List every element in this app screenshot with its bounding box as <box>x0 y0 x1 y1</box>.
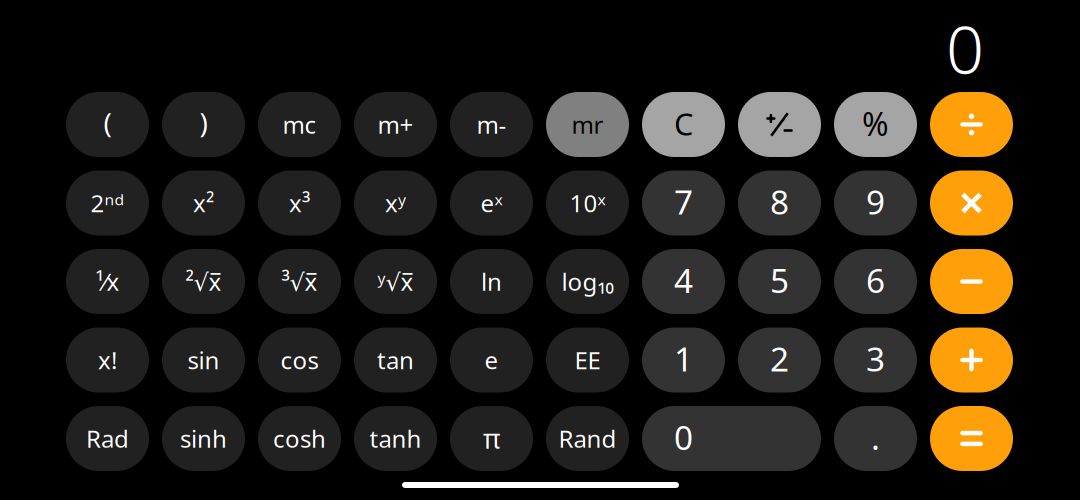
button[interactable]: 3 <box>834 327 917 392</box>
staticText: sinh <box>180 423 227 454</box>
staticText: eˣ <box>480 187 502 219</box>
staticText: e <box>484 344 498 376</box>
staticText: ³√x̅ <box>281 266 317 297</box>
staticText: ) <box>199 104 207 141</box>
button[interactable]: ( <box>66 92 149 157</box>
staticText: 0 <box>674 415 693 459</box>
staticText: Rad <box>86 423 129 454</box>
staticText: 7 <box>674 179 693 224</box>
button[interactable]: ln <box>450 249 533 314</box>
button[interactable]: 9 <box>834 170 917 235</box>
button[interactable]: cosh <box>258 406 341 471</box>
staticText: ²√x̅ <box>185 266 221 297</box>
button[interactable]: sinh <box>162 406 245 471</box>
button[interactable]: xʸ <box>354 170 437 235</box>
button[interactable]: tanh <box>354 406 437 471</box>
staticText: 10ˣ <box>569 187 605 219</box>
button[interactable]: ʸ√x̅ <box>354 249 437 314</box>
button[interactable]: eˣ <box>450 170 533 235</box>
button[interactable]: 6 <box>834 249 917 314</box>
button[interactable]: Plus or minus <box>738 92 821 157</box>
button[interactable]: ) <box>162 92 245 157</box>
button[interactable]: 5 <box>738 249 821 314</box>
button[interactable]: sin <box>162 327 245 392</box>
button[interactable]: Add <box>930 327 1013 392</box>
button[interactable]: x! <box>66 327 149 392</box>
staticText: ¹⁄x <box>95 266 119 297</box>
button[interactable]: ²√x̅ <box>162 249 245 314</box>
staticText: log₁₀ <box>561 266 613 297</box>
button[interactable]: Divide <box>930 92 1013 157</box>
staticText: cosh <box>273 423 326 454</box>
staticText: 4 <box>674 258 693 302</box>
staticText: mr <box>571 109 603 140</box>
button[interactable]: ¹⁄x <box>66 249 149 314</box>
staticText: tanh <box>369 423 421 454</box>
staticText: 0 <box>946 4 984 92</box>
button[interactable]: 1 <box>642 327 725 392</box>
staticText: π <box>483 421 500 456</box>
button[interactable]: . <box>834 406 917 471</box>
button[interactable]: tan <box>354 327 437 392</box>
staticText: 6 <box>866 258 885 302</box>
staticText: EE <box>574 344 600 376</box>
staticText: 2ⁿᵈ <box>90 187 124 219</box>
button[interactable]: x³ <box>258 170 341 235</box>
button[interactable]: 4 <box>642 249 725 314</box>
button[interactable]: ³√x̅ <box>258 249 341 314</box>
staticText: x² <box>193 187 214 219</box>
button[interactable]: x² <box>162 170 245 235</box>
staticText: x! <box>98 344 117 376</box>
staticText: m- <box>476 109 506 140</box>
button[interactable]: 7 <box>642 170 725 235</box>
button[interactable]: EE <box>546 327 629 392</box>
staticText: C <box>674 103 693 144</box>
button[interactable]: 2 <box>738 327 821 392</box>
staticText: tan <box>377 344 414 376</box>
button[interactable]: 0 <box>642 406 821 471</box>
button[interactable]: 2ⁿᵈ <box>66 170 149 235</box>
button[interactable]: cos <box>258 327 341 392</box>
staticText: ln <box>481 266 502 297</box>
button[interactable]: 10ˣ <box>546 170 629 235</box>
staticText: 2 <box>770 336 789 381</box>
button[interactable]: m+ <box>354 92 437 157</box>
button[interactable]: mc <box>258 92 341 157</box>
button[interactable]: π <box>450 406 533 471</box>
staticText: ( <box>103 104 111 141</box>
button[interactable]: m- <box>450 92 533 157</box>
button[interactable]: C <box>642 92 725 157</box>
button[interactable]: Rad <box>66 406 149 471</box>
staticText: sin <box>187 344 219 376</box>
staticText: xʸ <box>385 187 406 219</box>
button[interactable]: e <box>450 327 533 392</box>
staticText: 8 <box>770 179 789 224</box>
staticText: ʸ√x̅ <box>377 266 413 297</box>
button[interactable]: % <box>834 92 917 157</box>
staticText: x³ <box>289 187 310 219</box>
staticText: 1 <box>674 336 693 381</box>
button[interactable]: Subtract <box>930 249 1013 314</box>
staticText: cos <box>280 344 318 376</box>
button[interactable]: log₁₀ <box>546 249 629 314</box>
button[interactable]: 8 <box>738 170 821 235</box>
staticText: % <box>862 102 889 145</box>
button[interactable]: Multiply <box>930 170 1013 235</box>
staticText: 5 <box>770 258 789 302</box>
staticText: 3 <box>866 336 885 381</box>
staticText: m+ <box>377 109 413 140</box>
staticText: mc <box>282 109 316 140</box>
staticText: . <box>871 415 880 459</box>
button[interactable]: mr <box>546 92 629 157</box>
button[interactable]: Rand <box>546 406 629 471</box>
staticText: 9 <box>866 179 885 224</box>
button[interactable]: Equals <box>930 406 1013 471</box>
staticText: Rand <box>558 423 616 454</box>
